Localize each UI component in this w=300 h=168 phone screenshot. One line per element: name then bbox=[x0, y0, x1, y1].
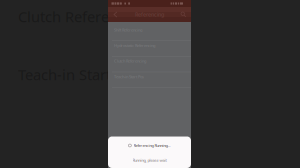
staticText: Clutch Referencing bbox=[18, 7, 147, 26]
staticText: Hydrostatic Referencing bbox=[114, 43, 155, 48]
button[interactable]: Back bbox=[109, 7, 121, 22]
button[interactable]: Search bbox=[177, 7, 189, 22]
staticText: Clutch Referencing bbox=[114, 58, 146, 64]
staticText: Referencing bbox=[135, 11, 164, 18]
staticText: Running, please wait bbox=[132, 158, 166, 163]
staticText: Referencing Running... bbox=[133, 143, 170, 148]
staticText: Teach-in Start Pos bbox=[114, 74, 144, 79]
staticText: Teach-in Start Pos bbox=[18, 65, 140, 84]
staticText: Shift Referencing bbox=[114, 27, 142, 32]
